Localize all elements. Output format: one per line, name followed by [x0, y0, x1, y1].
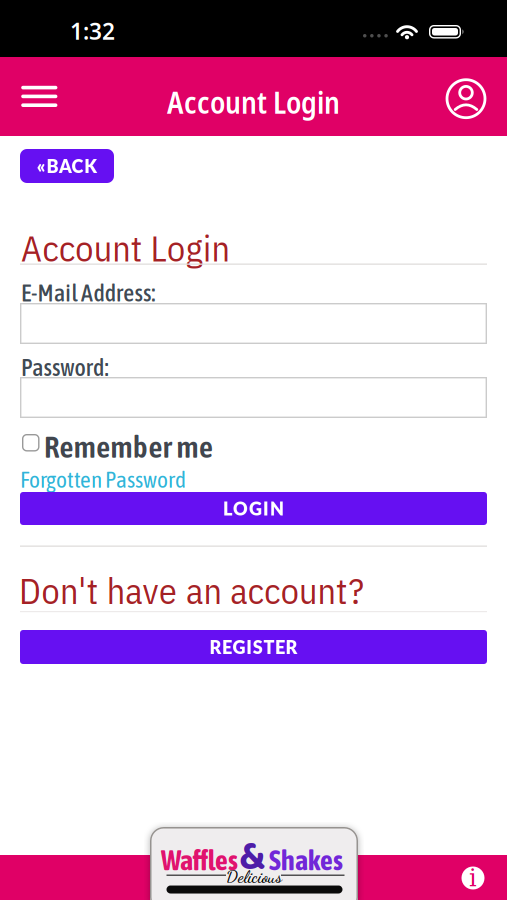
button[interactable]: Menu [11, 75, 68, 118]
staticText: 1:32 [70, 16, 115, 46]
button[interactable]: Password [20, 377, 487, 418]
staticText: Waffles [161, 844, 238, 876]
staticText: «BACK [37, 155, 97, 177]
staticText: Password: [21, 353, 108, 381]
staticText: Forgotten Password [20, 466, 186, 493]
staticText: REGISTER [209, 636, 298, 658]
button[interactable]: E-Mail Address [20, 303, 487, 344]
staticText: i [469, 864, 477, 892]
staticText: Delicious [226, 866, 282, 887]
staticText: LOGIN [223, 498, 284, 519]
button[interactable]: REGISTER [20, 630, 487, 664]
button[interactable]: Account [438, 71, 494, 127]
staticText: E-Mail Address: [21, 279, 155, 306]
staticText: Account Login [167, 82, 340, 123]
staticText: Don't have an account? [19, 567, 364, 614]
button[interactable]: Info [456, 861, 489, 894]
button[interactable]: «BACK [20, 149, 114, 183]
button[interactable]: Forgotten Password [20, 466, 186, 493]
staticText: Shakes [269, 844, 343, 876]
button[interactable]: LOGIN [20, 492, 487, 525]
button[interactable]: Remember me [18, 430, 43, 455]
staticText: & [239, 825, 266, 890]
staticText: Account Login [21, 225, 229, 271]
staticText: Remember me [44, 429, 213, 464]
